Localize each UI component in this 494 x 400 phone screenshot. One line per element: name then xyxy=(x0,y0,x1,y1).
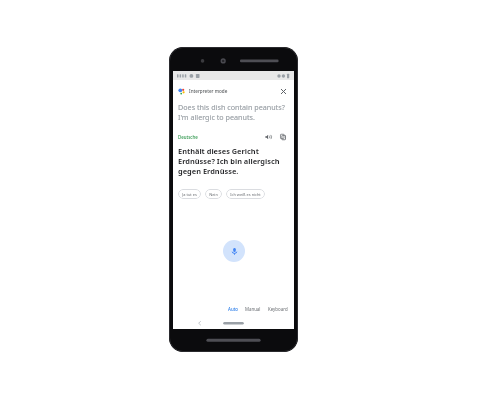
staticText: Does this dish contain peanuts? xyxy=(178,102,285,112)
staticText: gegen Erdnüsse. xyxy=(178,166,239,176)
staticText: Auto xyxy=(228,306,238,312)
button[interactable]: Microphone xyxy=(223,240,245,262)
staticText: I'm allergic to peanuts. xyxy=(178,112,255,122)
staticText: Interpreter mode xyxy=(189,88,228,94)
button[interactable]: Close xyxy=(277,85,289,97)
button[interactable]: Nein xyxy=(205,189,222,199)
button[interactable]: Ich weiß es nicht xyxy=(226,189,265,199)
button[interactable]: Keyboard xyxy=(267,304,289,314)
staticText: Ich weiß es nicht xyxy=(230,192,261,197)
button[interactable]: Ja tut es xyxy=(178,189,201,199)
staticText: Keyboard xyxy=(268,306,288,312)
staticText: Enthält dieses Gericht xyxy=(178,146,259,156)
staticText: Erdnüsse? Ich bin allergisch xyxy=(178,156,280,166)
button[interactable]: Auto xyxy=(227,304,239,314)
button[interactable]: Copy translation xyxy=(277,131,289,143)
button[interactable]: Manual xyxy=(244,304,262,314)
staticText: Manual xyxy=(245,306,261,312)
staticText: Nein xyxy=(209,192,218,197)
button[interactable]: Play translation xyxy=(262,131,274,143)
staticText: Ja tut es xyxy=(182,192,197,197)
staticText: Deutsche xyxy=(178,134,198,140)
